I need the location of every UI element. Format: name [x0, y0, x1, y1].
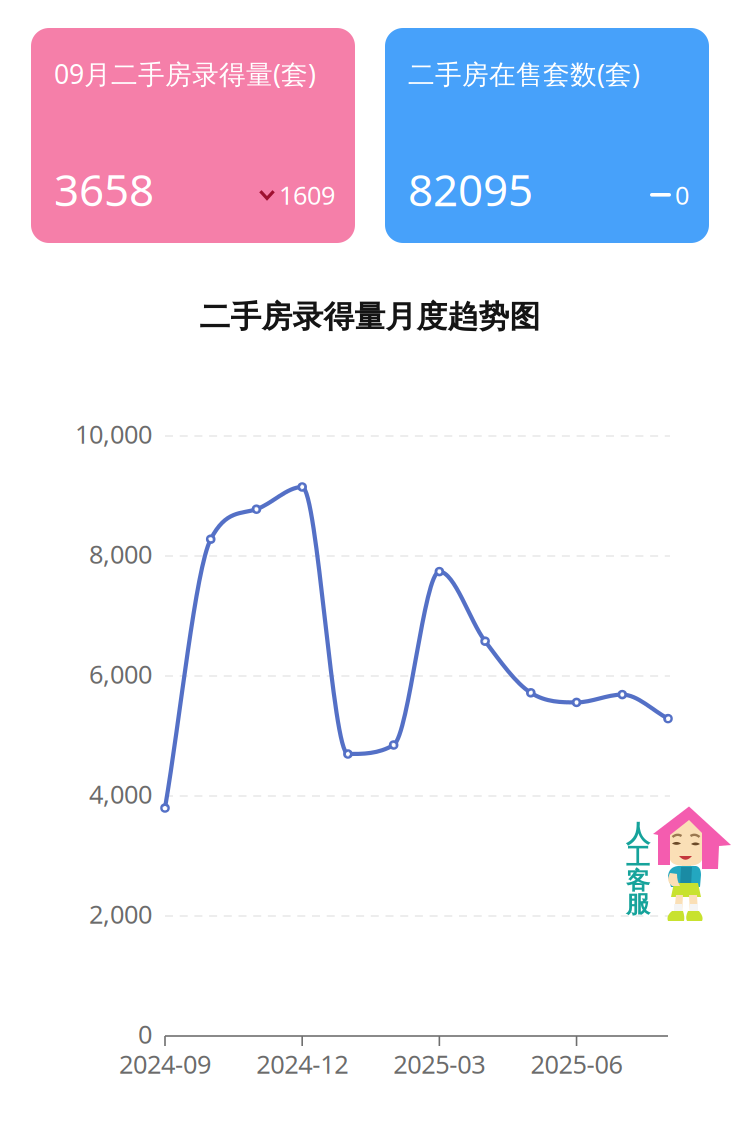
staticText: 服 [626, 889, 650, 919]
button[interactable]: 人工客服 [625, 805, 733, 925]
staticText: 2025-03 [393, 1047, 485, 1081]
staticText: 1609 [279, 178, 335, 212]
staticText: 人 [626, 819, 650, 848]
staticText: 09月二手房录得量(套) [54, 56, 316, 91]
button[interactable]: 09月二手房录得量(套) [31, 28, 355, 243]
button[interactable]: 二手房在售套数(套) [385, 28, 709, 243]
staticText: 客 [626, 866, 650, 895]
staticText: 2,000 [89, 897, 152, 931]
staticText: 二手房在售套数(套) [408, 56, 640, 91]
staticText: 0 [675, 178, 689, 212]
staticText: 4,000 [89, 777, 152, 811]
staticText: 82095 [408, 160, 533, 218]
staticText: 2024-09 [119, 1047, 211, 1081]
staticText: 2025-06 [530, 1047, 622, 1081]
staticText: 6,000 [89, 657, 152, 691]
staticText: 3658 [54, 160, 154, 218]
staticText: 8,000 [89, 537, 152, 571]
staticText: 2024-12 [256, 1047, 348, 1081]
staticText: 10,000 [75, 417, 152, 451]
staticText: 0 [138, 1017, 152, 1051]
staticText: 工 [626, 842, 650, 872]
staticText: 二手房录得量月度趋势图 [199, 298, 540, 336]
